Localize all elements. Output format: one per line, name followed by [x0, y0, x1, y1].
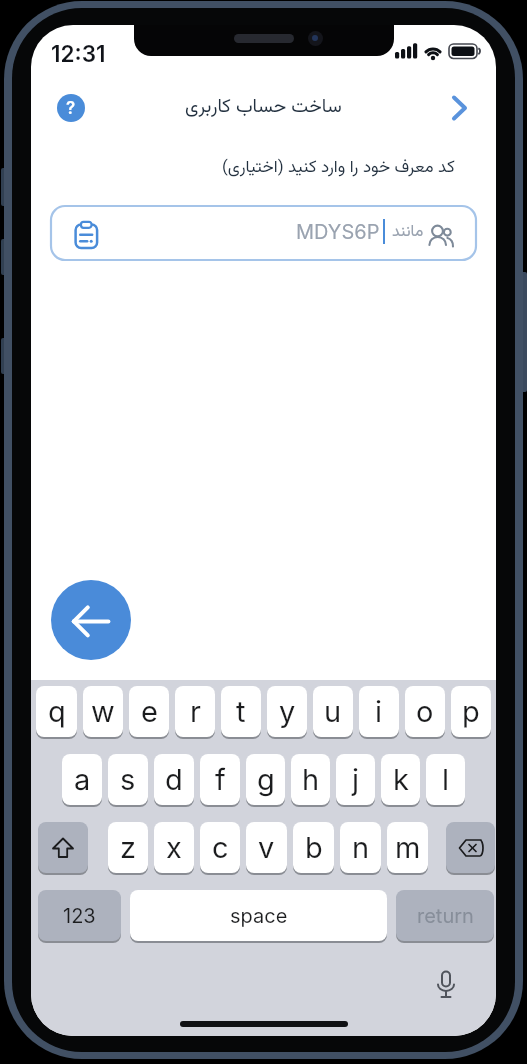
staticText: l	[442, 762, 450, 797]
staticText: j	[352, 762, 360, 797]
button[interactable]: r	[175, 686, 215, 737]
staticText: x	[166, 830, 182, 865]
staticText: o	[416, 694, 434, 729]
button[interactable]: d	[154, 754, 194, 805]
button[interactable]	[446, 822, 495, 873]
button[interactable]: n	[340, 822, 381, 873]
staticText: n	[352, 830, 370, 865]
button[interactable]: ?	[57, 94, 85, 122]
staticText: q	[48, 694, 66, 729]
staticText: c	[212, 830, 229, 865]
button[interactable]: w	[83, 686, 123, 737]
staticText: d	[165, 762, 183, 797]
button[interactable]: j	[336, 754, 375, 805]
button[interactable]: c	[200, 822, 240, 873]
button[interactable]	[51, 580, 131, 660]
staticText: z	[120, 830, 137, 865]
button[interactable]: o	[405, 686, 445, 737]
staticText: 123	[63, 904, 96, 928]
staticText: return	[417, 904, 474, 928]
staticText: w	[91, 694, 115, 729]
button[interactable]: i	[359, 686, 399, 737]
staticText: ?	[66, 98, 76, 119]
staticText: f	[215, 762, 226, 797]
staticText: a	[74, 762, 91, 797]
button[interactable]: m	[387, 822, 428, 873]
button[interactable]	[450, 96, 472, 120]
staticText: MDYS6P	[296, 220, 380, 244]
button[interactable]	[50, 205, 477, 261]
button[interactable]	[38, 822, 88, 873]
button[interactable]: v	[246, 822, 287, 873]
button[interactable]: f	[200, 754, 240, 805]
button[interactable]	[435, 970, 457, 1002]
staticText: i	[375, 694, 383, 729]
button[interactable]: b	[293, 822, 334, 873]
button[interactable]: y	[267, 686, 307, 737]
staticText: ساخت حساب کاربری	[185, 93, 342, 123]
staticText: کد معرف خود را وارد کنید (اختیاری)	[222, 155, 455, 182]
staticText: h	[302, 762, 320, 797]
button[interactable]: e	[129, 686, 169, 737]
staticText: p	[462, 694, 480, 729]
staticText: b	[305, 830, 323, 865]
staticText: k	[393, 762, 409, 797]
staticText: u	[324, 694, 342, 729]
staticText: v	[258, 830, 275, 865]
button[interactable]: 123	[38, 890, 121, 941]
button[interactable]: h	[291, 754, 330, 805]
button[interactable]: g	[246, 754, 285, 805]
button[interactable]: return	[396, 890, 494, 941]
staticText: e	[141, 694, 158, 729]
staticText: r	[190, 694, 201, 729]
button[interactable]: space	[130, 890, 387, 941]
staticText: space	[230, 904, 288, 928]
button[interactable]: a	[62, 754, 102, 805]
button[interactable]: u	[313, 686, 353, 737]
button[interactable]: p	[451, 686, 491, 737]
staticText: m	[395, 830, 421, 865]
staticText: مانند	[392, 220, 424, 245]
button[interactable]: z	[108, 822, 148, 873]
button[interactable]: s	[108, 754, 148, 805]
staticText: s	[120, 762, 136, 797]
staticText: g	[257, 762, 275, 797]
staticText: y	[279, 694, 296, 729]
button[interactable]: l	[426, 754, 465, 805]
staticText: t	[236, 694, 246, 729]
button[interactable]: q	[36, 686, 77, 737]
button[interactable]: k	[381, 754, 420, 805]
button[interactable]: x	[154, 822, 194, 873]
button[interactable]: t	[221, 686, 261, 737]
staticText: 12:31	[51, 40, 106, 67]
